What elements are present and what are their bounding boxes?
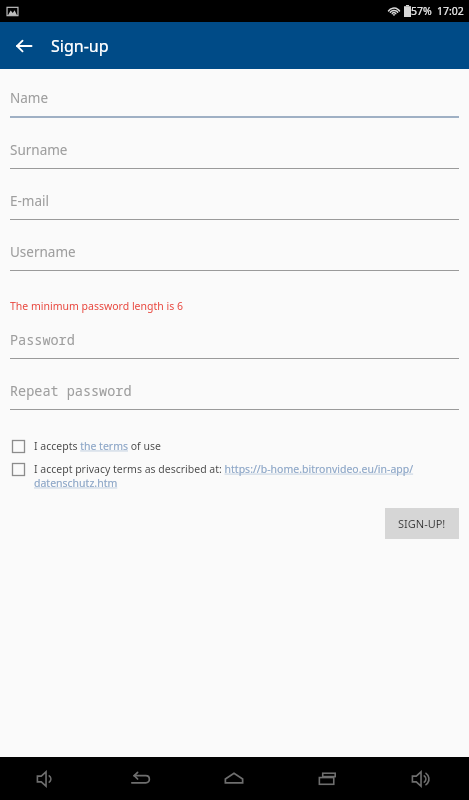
button[interactable]: SIGN-UP! [385,508,459,539]
staticText: The minimum password length is 6 [10,299,183,313]
button[interactable]: Back [93,757,187,800]
staticText: I accept privacy terms as described at: … [34,462,455,490]
button[interactable]: E-mail [0,183,469,234]
button[interactable]: I accepts the terms of use [0,436,469,456]
button[interactable]: I accept privacy terms as described at: … [0,459,469,493]
button[interactable]: Username [0,234,469,285]
button[interactable]: Name [0,80,469,132]
button[interactable]: Volume up [375,757,469,800]
staticText: Username [10,243,76,261]
staticText: 17:02 [437,4,464,18]
staticText: E-mail [10,192,50,210]
staticText: Name [10,89,49,107]
staticText: SIGN-UP! [398,516,446,531]
button[interactable]: Volume down [0,757,93,800]
button[interactable]: Home [187,757,281,800]
staticText: Surname [10,141,68,159]
staticText: 57% [411,4,432,18]
button[interactable]: Repeat password [0,373,469,424]
button[interactable]: Back [0,22,47,69]
staticText: Password [10,331,75,349]
staticText: Repeat password [10,382,132,400]
button[interactable]: Password [0,322,469,373]
staticText: I accepts the terms of use [34,439,161,453]
button[interactable]: Surname [0,132,469,183]
staticText: Sign-up [51,35,109,57]
button[interactable]: Recents [281,757,375,800]
